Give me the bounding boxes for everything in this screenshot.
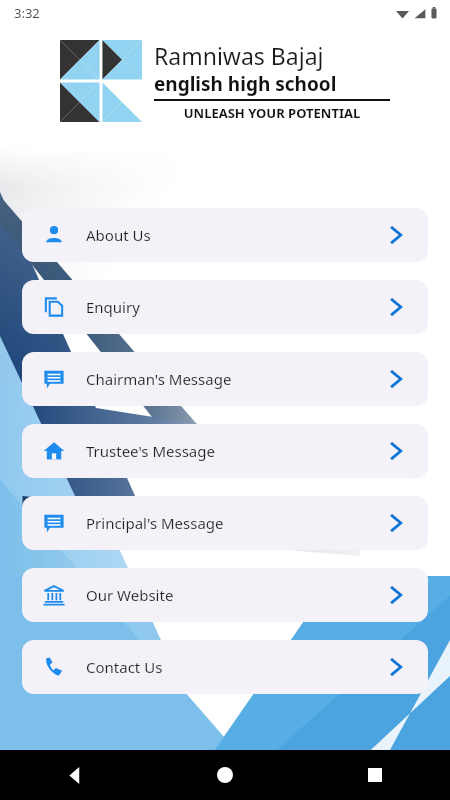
- button[interactable]: Principal's Message: [22, 496, 428, 550]
- staticText: Chairman's Message: [86, 369, 232, 389]
- staticText: About Us: [86, 225, 151, 245]
- button[interactable]: About Us: [22, 208, 428, 262]
- button[interactable]: Contact Us: [22, 640, 428, 694]
- button[interactable]: Chairman's Message: [22, 352, 428, 406]
- button[interactable]: Our Website: [22, 568, 428, 622]
- staticText: Ramniwas Bajaj: [154, 40, 324, 71]
- button[interactable]: Back: [0, 750, 150, 800]
- staticText: Trustee's Message: [86, 441, 215, 461]
- button[interactable]: Home: [150, 750, 300, 800]
- staticText: english high school: [154, 71, 337, 97]
- staticText: Enquiry: [86, 297, 140, 317]
- staticText: Principal's Message: [86, 513, 224, 533]
- button[interactable]: Recents: [300, 750, 450, 800]
- staticText: 3:32: [14, 4, 40, 22]
- staticText: Our Website: [86, 585, 174, 605]
- button[interactable]: Enquiry: [22, 280, 428, 334]
- button[interactable]: Trustee's Message: [22, 424, 428, 478]
- staticText: Contact Us: [86, 657, 163, 677]
- staticText: UNLEASH YOUR POTENTIAL: [154, 104, 390, 122]
